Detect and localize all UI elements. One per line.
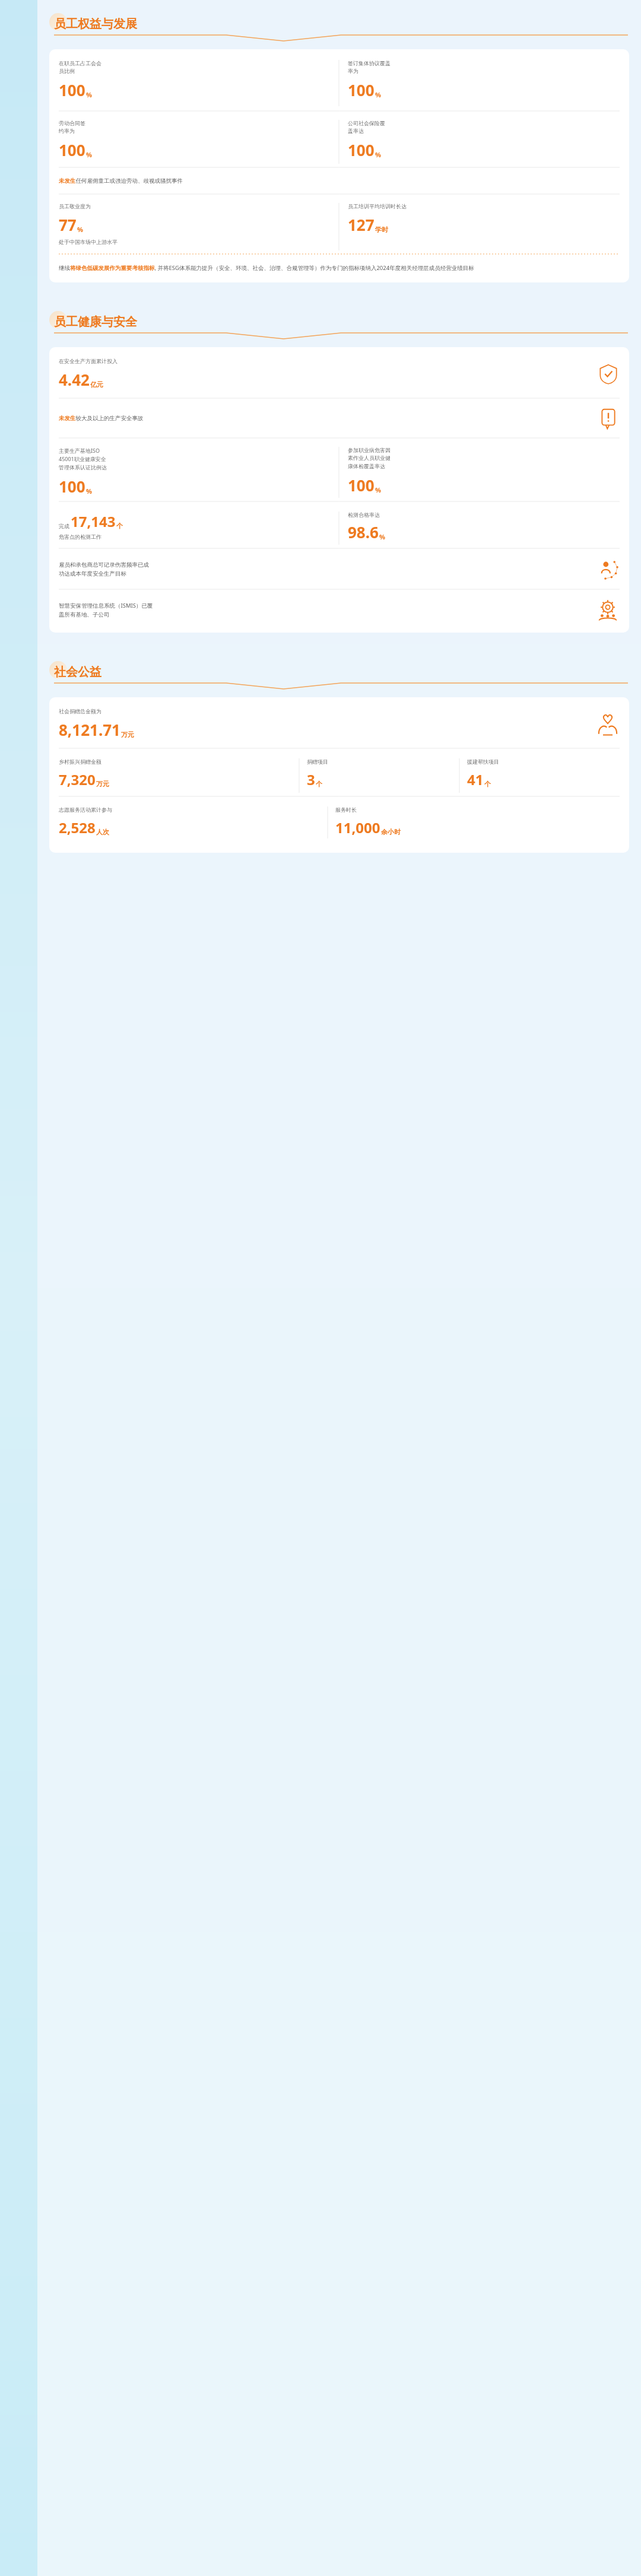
staticText: 万元 [96, 780, 109, 788]
staticText: % [375, 485, 381, 494]
staticText: % [379, 532, 385, 541]
staticText: 员工权益与发展 [54, 17, 137, 31]
staticText: 个 [484, 780, 491, 788]
staticText: 公司社会保险覆 盖率达 [348, 120, 385, 135]
staticText: 100 [59, 139, 85, 160]
button[interactable]: 员工安全 [596, 557, 620, 581]
staticText: 亿元 [90, 380, 103, 389]
staticText: 学时 [375, 225, 388, 234]
staticText: 捐赠项目 [307, 758, 328, 765]
staticText: % [375, 150, 381, 159]
staticText: 人次 [96, 828, 109, 836]
staticText: 社会公益 [54, 665, 101, 679]
staticText: % [77, 225, 83, 234]
button[interactable]: 智慧安保系统 [596, 598, 620, 622]
staticText: 100 [348, 80, 375, 100]
staticText: 乡村振兴捐赠金额 [59, 758, 101, 765]
staticText: 41 [467, 770, 484, 789]
staticText: 危害点的检测工作 [59, 533, 101, 540]
staticText: 万元 [121, 730, 134, 739]
staticText: 未发生任何雇佣童工或强迫劳动、歧视或骚扰事件 [59, 177, 183, 185]
staticText: 100 [348, 475, 375, 495]
staticText: 100 [59, 80, 85, 100]
staticText: 员工健康与安全 [54, 315, 137, 329]
staticText: 100 [59, 476, 85, 497]
staticText: 余小时 [381, 828, 401, 836]
staticText: 7,320 [59, 770, 96, 789]
staticText: 100 [348, 139, 375, 160]
button[interactable]: 公益捐赠 [596, 712, 620, 736]
staticText: 127 [348, 214, 375, 235]
staticText: 服务时长 [335, 806, 357, 813]
staticText: % [375, 90, 381, 99]
staticText: 在职员工占工会会 员比例 [59, 60, 101, 75]
staticText: 2,528 [59, 818, 96, 837]
staticText: % [86, 487, 92, 495]
staticText: % [86, 150, 92, 159]
staticText: 签订集体协议覆盖 率为 [348, 60, 391, 75]
staticText: 完成 [59, 523, 69, 529]
staticText: 参加职业病危害因 素作业人员职业健 康体检覆盖率达 [348, 447, 391, 470]
staticText: 77 [59, 214, 77, 235]
staticText: 劳动合同签 约率为 [59, 120, 85, 135]
staticText: 雇员和承包商总可记录伤害频率已成 功达成本年度安全生产目标 [59, 561, 596, 577]
staticText: 处于中国市场中上游水平 [59, 239, 118, 245]
staticText: 17,143 [71, 512, 116, 531]
staticText: 主要生产基地ISO 45001职业健康安全 管理体系认证比例达 [59, 447, 107, 471]
staticText: 员工敬业度为 [59, 203, 91, 209]
staticText: 3 [307, 770, 315, 789]
staticText: 个 [316, 780, 322, 788]
staticText: 继续将绿色低碳发展作为重要考核指标, 并将ESG体系能力提升（安全、环境、社会、… [59, 264, 474, 272]
staticText: % [86, 90, 92, 99]
staticText: 未发生较大及以上的生产安全事故 [59, 415, 597, 422]
staticText: 社会捐赠总金额为 [59, 708, 101, 714]
staticText: 志愿服务活动累计参与 [59, 806, 112, 813]
staticText: 检测合格率达 [348, 512, 380, 518]
staticText: 援建帮扶项目 [467, 758, 499, 765]
staticText: 员工培训平均培训时长达 [348, 203, 407, 209]
staticText: 4.42 [59, 369, 90, 390]
staticText: 在安全生产方面累计投入 [59, 358, 118, 364]
staticText: 98.6 [348, 522, 379, 542]
staticText: 智慧安保管理信息系统（ISMIS）已覆 盖所有基地、子公司 [59, 602, 596, 618]
staticText: 个 [116, 522, 123, 530]
staticText: 8,121.71 [59, 719, 120, 740]
button[interactable]: 警示 [597, 407, 620, 430]
staticText: 11,000 [335, 818, 380, 837]
button[interactable]: 安全防护 [597, 363, 620, 385]
